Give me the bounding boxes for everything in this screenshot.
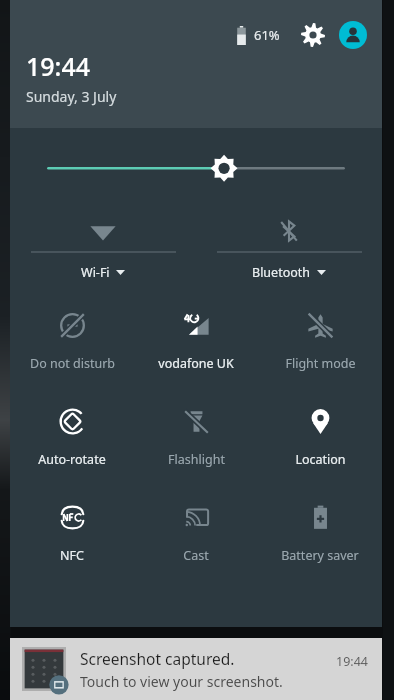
button[interactable]: vodafone UK [134,294,258,390]
button[interactable]: Flashlight [134,390,258,486]
button[interactable]: Flight mode [258,294,382,390]
button[interactable]: Settings [296,18,330,52]
staticText: NFC [60,547,84,564]
button[interactable]: Wi-Fi [10,204,196,294]
staticText: 19:44 [336,653,368,670]
button[interactable]: Bluetooth [196,204,382,294]
staticText: Cast [183,547,209,564]
staticText: Bluetooth [252,264,311,281]
staticText: Wi-Fi [81,264,110,281]
button[interactable]: Do not disturb [10,294,134,390]
staticText: Do not disturb [30,355,115,372]
staticText: Screenshot captured. [80,648,235,669]
button[interactable]: User profile [336,18,370,52]
staticText: Auto-rotate [38,451,106,468]
button[interactable]: Battery saver [258,486,382,582]
staticText: vodafone UK [158,355,234,372]
staticText: Location [295,451,346,468]
button[interactable]: Screenshot captured. [10,638,382,700]
staticText: 61% [254,26,280,44]
staticText: Battery saver [281,547,359,564]
button[interactable]: Brightness [10,128,382,204]
button[interactable]: Location [258,390,382,486]
staticText: Sunday, 3 July [26,87,117,106]
button[interactable]: Cast [134,486,258,582]
staticText: Flight mode [285,355,356,372]
button[interactable]: NFC [10,486,134,582]
button[interactable]: Auto-rotate [10,390,134,486]
staticText: Touch to view your screenshot. [80,672,283,691]
staticText: 19:44 [26,49,91,83]
staticText: Flashlight [168,451,225,468]
